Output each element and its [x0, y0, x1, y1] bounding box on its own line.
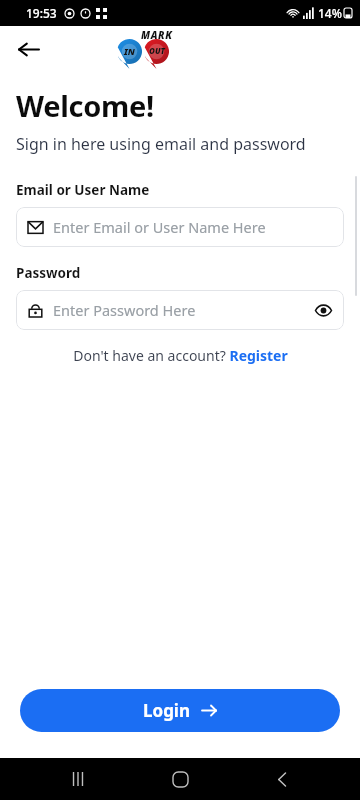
staticText: Enter Password Here	[53, 300, 315, 320]
staticText: OUT	[149, 45, 165, 56]
button[interactable]: Back	[258, 758, 306, 800]
button[interactable]: Email	[16, 207, 344, 247]
other: Email	[28, 220, 43, 235]
staticText: Password	[16, 264, 81, 282]
staticText: Sign in here using email and password	[16, 133, 306, 155]
staticText: Enter Email or User Name Here	[53, 217, 332, 237]
staticText: Email or User Name	[16, 181, 150, 199]
staticText: IN	[124, 45, 135, 57]
button[interactable]: Recents	[54, 758, 102, 800]
staticText: MARK	[141, 28, 173, 42]
staticText: Welcome!	[16, 86, 154, 125]
button[interactable]: Password	[16, 290, 344, 330]
button[interactable]: Show password	[315, 302, 332, 319]
button[interactable]: Home	[156, 758, 204, 800]
button[interactable]: Back	[10, 31, 46, 67]
staticText: 19:53	[26, 5, 57, 21]
staticText: 14%	[318, 5, 342, 21]
button[interactable]: Don't have an account? Register	[65, 342, 296, 369]
other: Password	[28, 303, 43, 318]
button[interactable]: Login	[20, 689, 340, 732]
staticText: Login	[143, 699, 191, 722]
staticText: Don't have an account? Register	[73, 346, 288, 365]
